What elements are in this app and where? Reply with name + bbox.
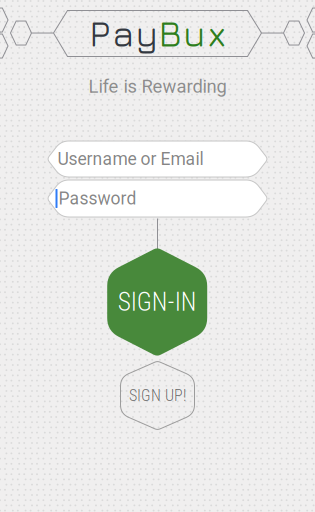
staticText: Username or Email [57, 149, 203, 169]
staticText: Password [58, 188, 136, 209]
staticText: Pay [89, 12, 158, 54]
staticText: Bux [158, 12, 226, 54]
staticText: SIGN UP! [129, 386, 186, 405]
button[interactable]: SIGN-IN [107, 247, 207, 356]
button[interactable]: SIGN UP! [120, 361, 194, 430]
staticText: Life is Rewarding [88, 76, 226, 97]
staticText: SIGN-IN [118, 287, 197, 317]
